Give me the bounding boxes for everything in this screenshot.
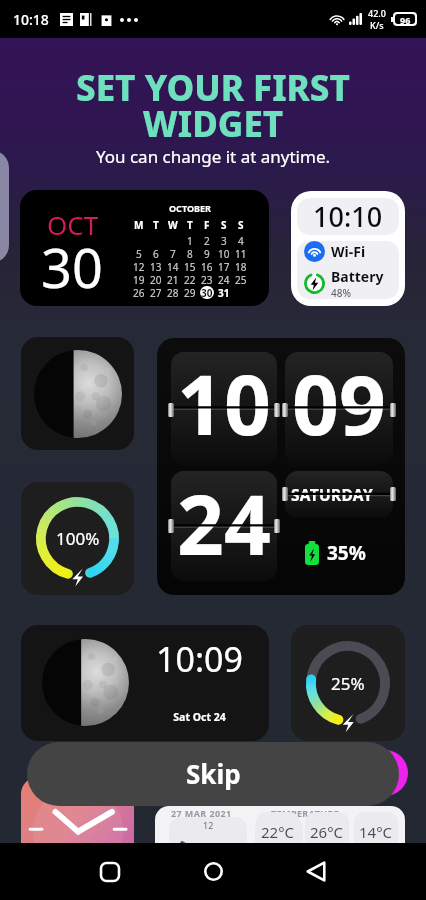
staticText: 19 [133, 273, 145, 286]
staticText: 13 [150, 260, 162, 273]
staticText: SATURDAY [291, 484, 373, 505]
staticText: 96 [400, 14, 411, 24]
staticText: 27 [150, 286, 162, 299]
staticText: 14 [167, 260, 179, 273]
staticText: 10 [218, 247, 230, 260]
staticText: 14°C [359, 822, 393, 842]
button[interactable] [21, 777, 134, 881]
staticText: 6 [153, 247, 159, 260]
staticText: Battery [331, 267, 384, 286]
staticText: 17 [218, 260, 230, 273]
staticText: TEMPERATURE [271, 807, 340, 819]
staticText: M [134, 218, 144, 231]
staticText: 10:18 [13, 10, 49, 29]
staticText: OCT [47, 207, 99, 242]
staticText: 9 [204, 247, 210, 260]
staticText: 100% [56, 527, 100, 550]
staticText: S [221, 218, 227, 231]
button[interactable]: 10:10 [291, 191, 405, 306]
button[interactable]: Home [181, 843, 245, 900]
staticText: 12 [133, 260, 145, 273]
staticText: 26°C [310, 822, 344, 842]
staticText: 30 [41, 230, 103, 304]
staticText: 5 [136, 247, 142, 260]
staticText: 22 [184, 273, 196, 286]
staticText: 4 [238, 234, 244, 247]
staticText: 10:10 [313, 198, 383, 235]
staticText: 11 [235, 247, 247, 260]
staticText: 25 [235, 273, 247, 286]
staticText: 8 [187, 247, 193, 260]
staticText: 3 [221, 234, 227, 247]
staticText: K/s [370, 19, 384, 31]
staticText: OCTOBER [169, 202, 211, 214]
staticText: Skip [186, 756, 241, 791]
staticText: 28 [167, 286, 179, 299]
staticText: S [238, 218, 244, 231]
staticText: 35% [327, 540, 366, 566]
staticText: 22°C [261, 822, 295, 842]
button[interactable]: Skip [27, 742, 399, 806]
staticText: W [168, 218, 178, 231]
staticText: 09 [292, 352, 386, 459]
staticText: 18 [235, 260, 247, 273]
staticText: 24 [177, 471, 271, 577]
staticText: 21 [167, 273, 179, 286]
staticText: T [153, 218, 159, 231]
staticText: SET YOUR FIRST WIDGET [0, 64, 426, 148]
staticText: 20 [150, 273, 162, 286]
staticText: 25% [331, 672, 365, 695]
button[interactable]: Recent apps [78, 843, 142, 900]
staticText: 42.0 [368, 7, 386, 19]
button[interactable]: 10 [157, 338, 405, 595]
staticText: 30 [201, 286, 213, 299]
staticText: 15 [184, 260, 196, 273]
staticText: 29 [184, 286, 196, 299]
staticText: 23 [201, 273, 213, 286]
button[interactable]: 100% [21, 482, 134, 595]
button[interactable]: 10:09 [21, 625, 269, 741]
staticText: Wi-Fi [331, 242, 366, 261]
staticText: T [187, 218, 193, 231]
button[interactable]: OCT [20, 190, 269, 306]
staticText: 2 [204, 234, 210, 247]
staticText: 1 [187, 234, 193, 247]
staticText: 27 MAR 2021 [171, 807, 232, 819]
button[interactable]: Back [284, 843, 348, 900]
staticText: 10:09 [137, 636, 262, 682]
staticText: F [204, 218, 210, 231]
staticText: 24 [218, 273, 230, 286]
staticText: 31 [218, 286, 230, 299]
staticText: 48% [331, 286, 351, 299]
staticText: 16 [201, 260, 213, 273]
staticText: 7 [170, 247, 176, 260]
staticText: Sat Oct 24 [137, 710, 262, 724]
button[interactable]: 27 MAR 2021 [155, 806, 405, 881]
staticText: You can change it at anytime. [0, 145, 426, 168]
staticText: 10 [177, 352, 271, 459]
button[interactable] [21, 337, 134, 450]
button[interactable]: 25% [291, 625, 405, 741]
staticText: 26 [133, 286, 145, 299]
staticText: 12 [203, 819, 214, 831]
